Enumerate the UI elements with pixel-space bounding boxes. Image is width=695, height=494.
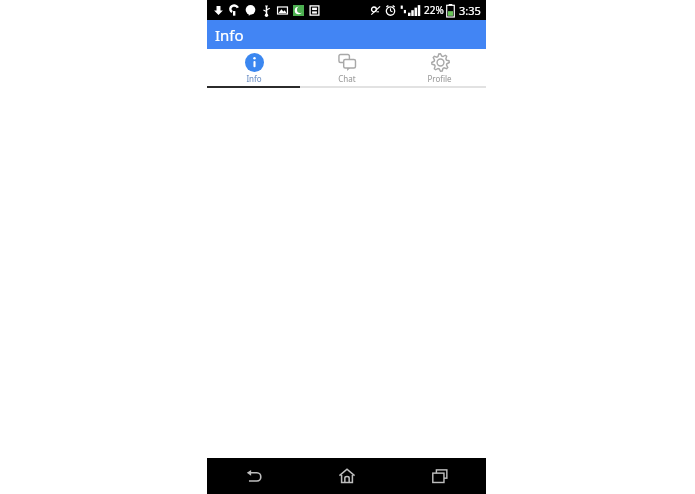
button[interactable]: Recent apps	[393, 458, 486, 494]
button[interactable]: Back	[207, 458, 300, 494]
button[interactable]: Info	[207, 49, 300, 86]
staticText: Info	[215, 25, 244, 45]
staticText: Profile	[427, 73, 452, 84]
staticText: 3:35	[459, 3, 481, 18]
button[interactable]: Profile	[393, 49, 486, 86]
button[interactable]: Home	[300, 458, 393, 494]
staticText: Info	[246, 73, 262, 84]
button[interactable]: Chat	[300, 49, 393, 86]
staticText: Chat	[338, 73, 356, 84]
staticText: 22%	[424, 3, 444, 17]
